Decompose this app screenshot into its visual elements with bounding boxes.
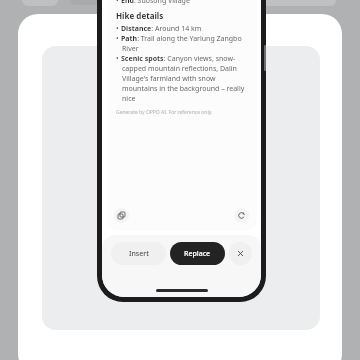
staticText: capped mountain reflections, Dalin xyxy=(122,64,237,74)
staticText: • xyxy=(116,0,119,6)
staticText: • xyxy=(116,34,119,44)
staticText: Generate by OPPO AI. For reference only. xyxy=(116,109,213,116)
staticText: • xyxy=(116,54,119,64)
staticText: • xyxy=(116,24,119,34)
staticText: Insert xyxy=(129,249,149,259)
staticText: End: Suosong Village xyxy=(121,0,190,6)
staticText: nice xyxy=(122,94,136,104)
staticText: Distance: Around 14 km xyxy=(121,24,202,34)
button[interactable]: Regenerate xyxy=(234,208,249,223)
staticText: Hike details xyxy=(116,10,164,21)
button[interactable]: Replace xyxy=(170,242,225,265)
staticText: Village's farmland with snow xyxy=(122,74,216,84)
button[interactable]: Insert xyxy=(111,242,166,265)
staticText: River xyxy=(122,44,139,54)
staticText: Path: Trail along the Yarlung Zangbo xyxy=(121,34,242,44)
staticText: mountains in the background – really xyxy=(122,84,245,94)
staticText: Replace xyxy=(184,249,211,259)
button[interactable]: Copy xyxy=(114,208,129,223)
staticText: Scenic spots: Canyon views, snow- xyxy=(121,54,236,64)
button[interactable]: Close xyxy=(229,242,252,265)
